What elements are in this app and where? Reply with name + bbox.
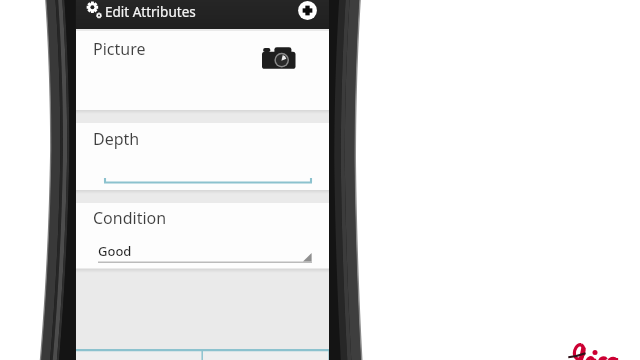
button[interactable]: Condition: Good (98, 241, 312, 271)
button[interactable]: Picture (76, 31, 330, 110)
button[interactable]: Cancel (76, 349, 203, 360)
staticText: Condition (93, 207, 167, 229)
button[interactable]: Condition (76, 203, 330, 268)
button[interactable]: Depth (76, 123, 330, 190)
staticText: Depth (93, 128, 140, 150)
staticText: Good (98, 242, 132, 260)
button[interactable]: Add attribute (298, 1, 317, 20)
button[interactable]: Save (203, 349, 330, 360)
button[interactable]: Take picture (262, 47, 297, 72)
button[interactable]: Depth value (104, 174, 312, 186)
staticText: Picture (93, 38, 146, 60)
button[interactable]: Settings (86, 1, 106, 23)
staticText: Edit Attributes (105, 3, 196, 21)
